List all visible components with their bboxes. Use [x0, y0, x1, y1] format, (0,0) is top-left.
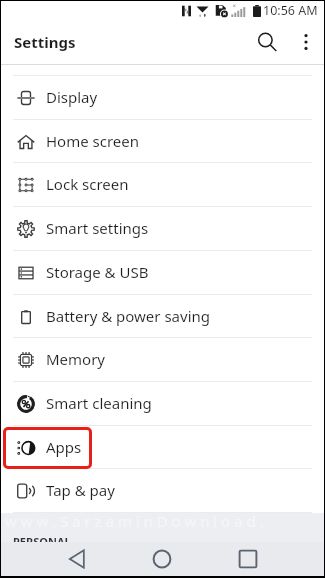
- button[interactable]: Tap & pay: [1, 469, 324, 513]
- staticText: w w w . S a r z a m i n D o w n l o a d …: [5, 511, 264, 531]
- button[interactable]: More options: [291, 27, 321, 57]
- button[interactable]: Home: [119, 542, 205, 576]
- button[interactable]: Lock screen: [1, 163, 324, 207]
- button[interactable]: Smart cleaning: [1, 382, 324, 426]
- staticText: Settings: [14, 32, 76, 52]
- staticText: Battery & power saving: [46, 306, 211, 326]
- button[interactable]: Memory: [1, 338, 324, 382]
- staticText: Lock screen: [46, 174, 129, 194]
- button[interactable]: Battery & power saving: [1, 295, 324, 338]
- button[interactable]: Search: [249, 24, 285, 60]
- staticText: Memory: [46, 349, 106, 369]
- staticText: Home screen: [46, 131, 140, 151]
- button[interactable]: Display: [1, 76, 324, 120]
- staticText: Display: [46, 87, 98, 107]
- button[interactable]: Storage & USB: [1, 251, 324, 295]
- button[interactable]: Back: [34, 542, 119, 576]
- staticText: PERSONAL: [13, 534, 71, 549]
- staticText: Tap & pay: [46, 480, 115, 500]
- staticText: Apps: [46, 437, 82, 457]
- button[interactable]: Home screen: [1, 120, 324, 163]
- staticText: Smart cleaning: [46, 393, 152, 413]
- staticText: Smart settings: [46, 218, 149, 238]
- button[interactable]: Apps: [1, 426, 324, 469]
- button[interactable]: Recents: [205, 542, 291, 576]
- staticText: 10:56 AM: [263, 2, 318, 19]
- staticText: Storage & USB: [46, 262, 149, 282]
- button[interactable]: Smart settings: [1, 207, 324, 251]
